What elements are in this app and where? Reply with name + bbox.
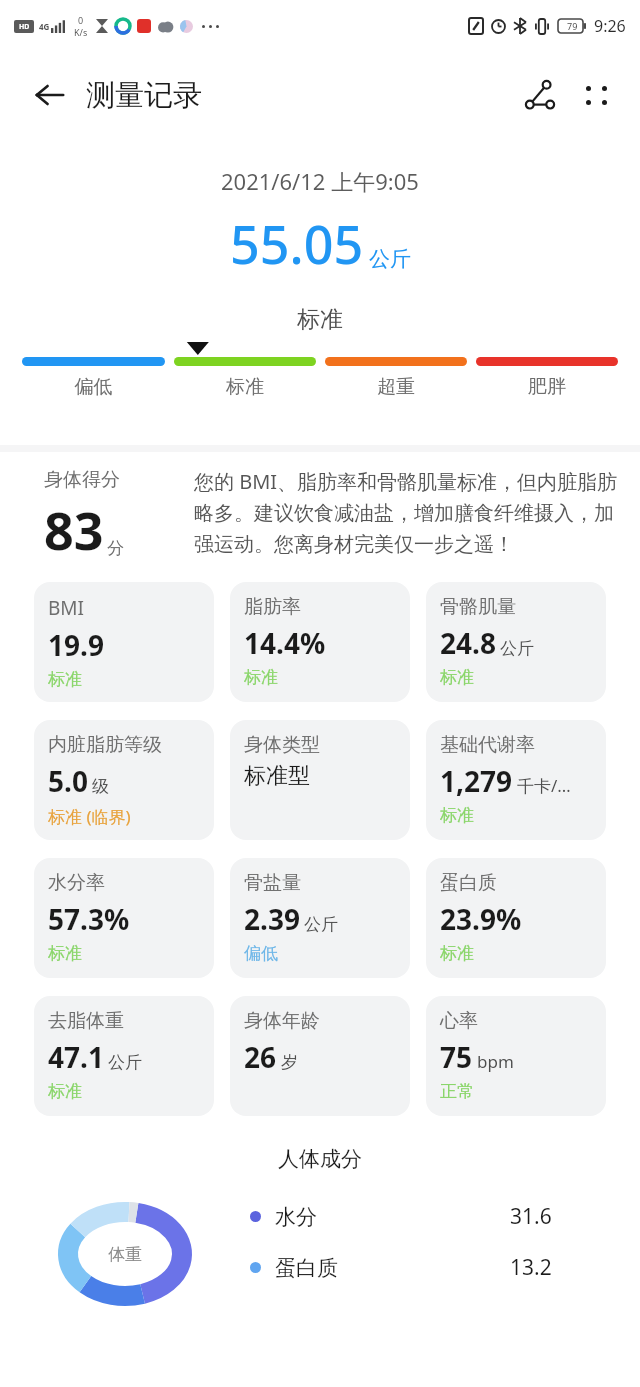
button[interactable]: 分享 — [512, 67, 568, 123]
staticText: 9:26 — [594, 15, 626, 37]
staticText: 去脂体重 — [48, 1009, 124, 1033]
staticText: 正常 — [440, 1081, 474, 1102]
staticText: 19.9 — [48, 626, 104, 664]
staticText: 内脏脂肪等级 — [48, 733, 162, 757]
staticText: 31.6 — [510, 1202, 640, 1231]
button[interactable]: 更多选项 — [568, 67, 624, 123]
staticText: 标准 — [174, 375, 316, 399]
button[interactable]: 去脂体重 — [34, 996, 214, 1116]
button[interactable]: 身体类型 — [230, 720, 410, 840]
staticText: 24.8 — [440, 624, 496, 662]
staticText: 蛋白质 — [275, 1255, 338, 1281]
staticText: 标准 (临界) — [48, 805, 131, 828]
staticText: 骨骼肌量 — [440, 595, 516, 619]
staticText: 标准 — [48, 669, 82, 690]
button[interactable]: 蛋白质 — [426, 858, 606, 978]
staticText: 超重 — [325, 375, 467, 399]
staticText: 公斤 — [304, 914, 338, 935]
staticText: 标准 — [48, 943, 82, 964]
staticText: BMI — [48, 595, 85, 621]
staticText: 偏低 — [244, 943, 278, 964]
button[interactable]: 水分率 — [34, 858, 214, 978]
staticText: 75 — [440, 1038, 473, 1076]
button[interactable]: 蛋白质 — [250, 1253, 640, 1282]
staticText: 身体年龄 — [244, 1009, 320, 1033]
staticText: 标准 — [440, 667, 474, 688]
button[interactable]: 水分 — [250, 1202, 640, 1231]
staticText: 脂肪率 — [244, 595, 301, 619]
staticText: 4G — [39, 21, 50, 32]
button[interactable]: 内脏脂肪等级 — [34, 720, 214, 840]
staticText: 身体类型 — [244, 733, 320, 757]
staticText: 2.39 — [244, 900, 300, 938]
staticText: bpm — [477, 1050, 514, 1073]
staticText: 级 — [92, 776, 109, 797]
staticText: 分 — [107, 538, 124, 559]
button[interactable]: 返回 — [24, 69, 76, 121]
button[interactable]: 身体年龄 — [230, 996, 410, 1116]
staticText: 83 — [44, 494, 104, 565]
staticText: 26 — [244, 1038, 277, 1076]
staticText: 心率 — [440, 1009, 478, 1033]
staticText: 体重 — [108, 1244, 142, 1265]
staticText: 人体成分 — [0, 1146, 640, 1172]
button[interactable]: BMI — [34, 582, 214, 702]
staticText: K/s — [74, 26, 88, 38]
staticText: 13.2 — [510, 1253, 640, 1282]
staticText: 测量记录 — [86, 77, 202, 114]
staticText: 标准 — [0, 305, 640, 334]
staticText: HD — [19, 22, 30, 32]
button[interactable]: 骨骼肌量 — [426, 582, 606, 702]
staticText: 您的 BMI、脂肪率和骨骼肌量标准，但内脏脂肪略多。建议饮食减油盐，增加膳食纤维… — [194, 468, 618, 557]
staticText: 标准 — [244, 667, 278, 688]
staticText: 岁 — [281, 1052, 298, 1073]
staticText: 57.3% — [48, 900, 130, 938]
staticText: 蛋白质 — [440, 871, 497, 895]
staticText: 身体得分 — [44, 468, 120, 492]
staticText: 骨盐量 — [244, 871, 301, 895]
button[interactable]: 心率 — [426, 996, 606, 1116]
button[interactable]: 骨盐量 — [230, 858, 410, 978]
staticText: 公斤 — [500, 638, 534, 659]
staticText: 公斤 — [369, 246, 411, 272]
staticText: 47.1 — [48, 1038, 104, 1076]
staticText: 千卡/… — [517, 774, 571, 797]
staticText: 公斤 — [108, 1052, 142, 1073]
button[interactable]: 基础代谢率 — [426, 720, 606, 840]
staticText: 肥胖 — [476, 375, 618, 399]
staticText: 标准 — [48, 1081, 82, 1102]
staticText: 0 — [78, 14, 84, 26]
staticText: 5.0 — [48, 762, 88, 800]
staticText: 水分率 — [48, 871, 105, 895]
staticText: 23.9% — [440, 900, 522, 938]
staticText: 标准 — [440, 943, 474, 964]
staticText: 基础代谢率 — [440, 733, 535, 757]
staticText: 55.05 — [230, 208, 364, 279]
staticText: 标准型 — [244, 762, 310, 790]
staticText: 水分 — [275, 1204, 317, 1230]
staticText: 偏低 — [22, 375, 165, 399]
staticText: 1,279 — [440, 762, 513, 800]
staticText: 79 — [567, 20, 578, 32]
staticText: 2021/6/12 上午9:05 — [221, 166, 419, 196]
staticText: 14.4% — [244, 624, 326, 662]
button[interactable]: 脂肪率 — [230, 582, 410, 702]
staticText: 标准 — [440, 805, 474, 826]
